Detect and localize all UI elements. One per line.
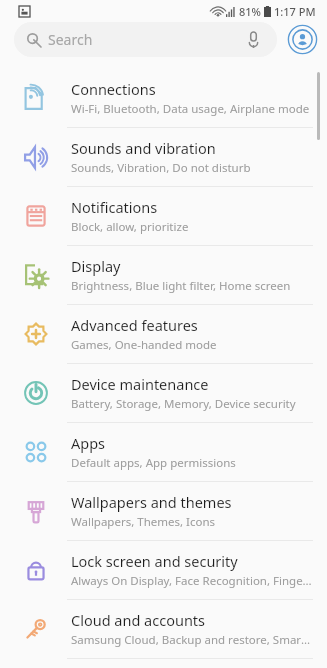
staticText: Wallpapers, Themes, Icons xyxy=(71,514,216,530)
button[interactable]: Account xyxy=(287,24,318,55)
button[interactable]: Apps xyxy=(0,423,327,481)
button[interactable]: Advanced features xyxy=(0,305,327,363)
staticText: Brightness, Blue light filter, Home scre… xyxy=(71,278,291,294)
staticText: Samsung Cloud, Backup and restore, Smart… xyxy=(71,632,313,648)
button[interactable]: Connections xyxy=(0,69,327,127)
staticText: Lock screen and security xyxy=(71,551,238,571)
button[interactable]: Display xyxy=(0,246,327,304)
staticText: Always On Display, Face Recognition, Fin… xyxy=(71,573,312,589)
staticText: Sounds and vibration xyxy=(71,138,216,158)
button[interactable]: Lock screen and security xyxy=(0,541,327,599)
staticText: Wi-Fi, Bluetooth, Data usage, Airplane m… xyxy=(71,101,310,117)
staticText: Device maintenance xyxy=(71,374,209,394)
button[interactable]: Voice search xyxy=(242,29,264,51)
staticText: Connections xyxy=(71,79,156,99)
button[interactable]: Cloud and accounts xyxy=(0,600,327,658)
staticText: Advanced features xyxy=(71,315,198,335)
button[interactable]: Search xyxy=(14,22,277,57)
staticText: Default apps, App permissions xyxy=(71,455,236,471)
staticText: Apps xyxy=(71,433,106,453)
staticText: Cloud and accounts xyxy=(71,610,206,630)
staticText: Search xyxy=(48,30,93,49)
staticText: Block, allow, prioritize xyxy=(71,219,189,235)
staticText: 81% xyxy=(239,4,261,19)
staticText: Games, One-handed mode xyxy=(71,337,217,353)
staticText: 1:17 PM xyxy=(274,4,316,19)
staticText: Display xyxy=(71,256,121,276)
staticText: Sounds, Vibration, Do not disturb xyxy=(71,160,251,176)
button[interactable]: Sounds and vibration xyxy=(0,128,327,186)
button[interactable]: Notifications xyxy=(0,187,327,245)
staticText: Wallpapers and themes xyxy=(71,492,232,512)
staticText: Battery, Storage, Memory, Device securit… xyxy=(71,396,296,412)
staticText: Notifications xyxy=(71,197,158,217)
button[interactable]: Wallpapers and themes xyxy=(0,482,327,540)
button[interactable]: Device maintenance xyxy=(0,364,327,422)
